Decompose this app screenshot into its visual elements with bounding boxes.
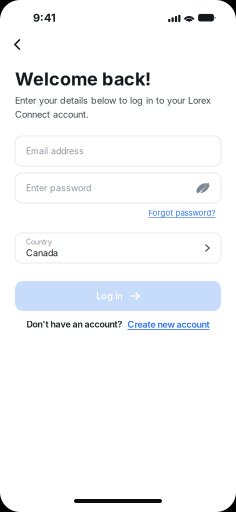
button[interactable]: Back — [0, 32, 40, 56]
button[interactable]: Create new account — [127, 319, 209, 330]
staticText: Forgot password? — [148, 208, 215, 218]
staticText: 9:41 — [33, 11, 56, 24]
staticText: Enter password — [26, 183, 91, 193]
staticText: Log in — [96, 290, 123, 301]
staticText: Country — [26, 238, 52, 246]
staticText: Canada — [26, 248, 58, 258]
button[interactable]: Country — [15, 233, 221, 263]
staticText: Email address — [26, 146, 84, 156]
staticText: Create new account — [127, 319, 209, 330]
staticText: Enter your details below to log in to yo… — [15, 95, 211, 120]
button[interactable]: Enter password — [15, 173, 221, 203]
button[interactable]: Email address — [15, 136, 221, 166]
staticText: Welcome back! — [15, 68, 151, 90]
staticText: Don't have an account? — [26, 319, 122, 330]
button[interactable]: Forgot password? — [148, 208, 215, 218]
button[interactable]: Log in — [15, 281, 221, 311]
